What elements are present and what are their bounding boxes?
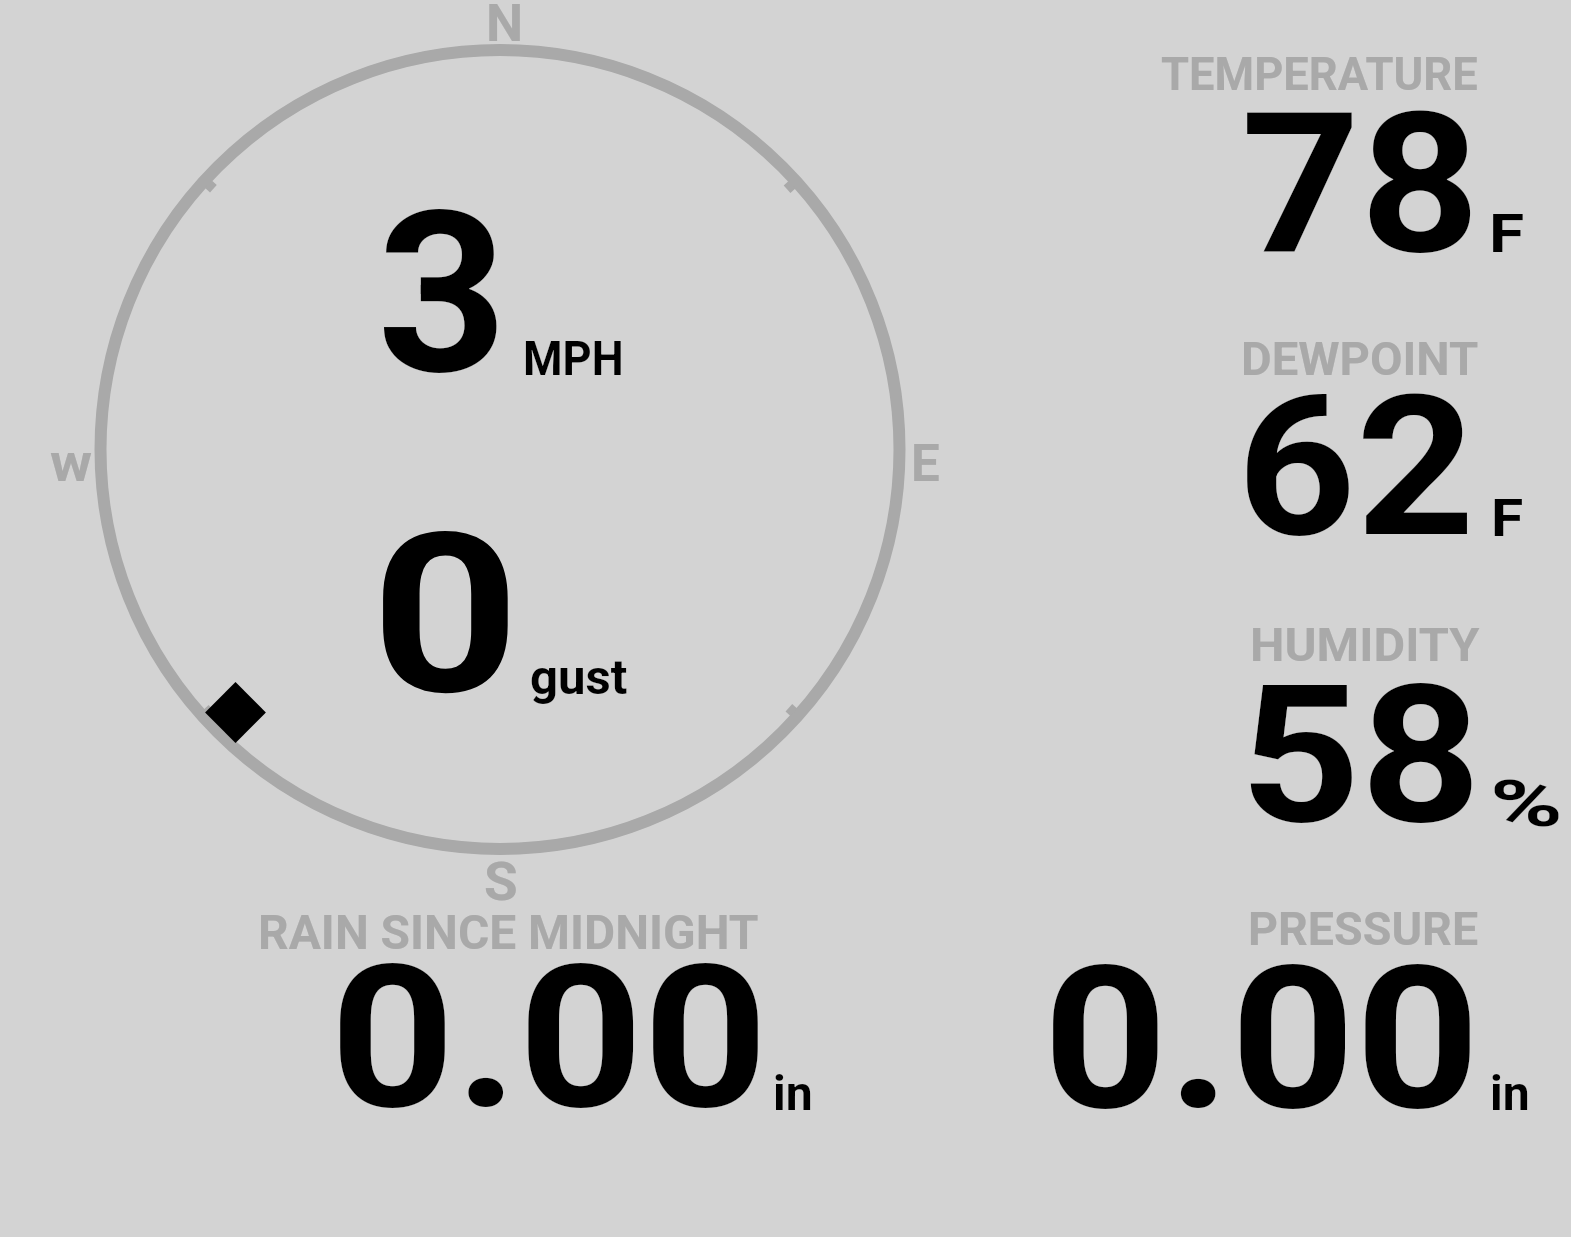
staticText: E — [911, 434, 940, 494]
button[interactable]: Humidity 58 percent — [1040, 610, 1571, 850]
staticText: HUMIDITY — [1250, 617, 1480, 672]
staticText: TEMPERATURE — [1161, 46, 1478, 101]
staticText: F — [1491, 489, 1523, 549]
staticText: PRESSURE — [1248, 901, 1479, 956]
staticText: RAIN SINCE MIDNIGHT — [258, 904, 759, 960]
staticText: w — [50, 432, 92, 494]
button[interactable]: Pressure 0.00 inches — [1000, 895, 1571, 1135]
button[interactable]: Temperature 78 degrees Fahrenheit — [1040, 40, 1571, 280]
staticText: in — [1490, 1065, 1530, 1121]
staticText: S — [484, 851, 518, 913]
staticText: gust — [530, 649, 628, 705]
staticText: DEWPOINT — [1241, 332, 1479, 386]
button[interactable]: Wind 3 miles per hour, gusting 0, from t… — [90, 0, 970, 905]
staticText: 0.00 — [330, 922, 769, 1154]
staticText: in — [773, 1065, 813, 1121]
staticText: 3 — [377, 162, 508, 426]
staticText: 58 — [1240, 644, 1482, 868]
button[interactable]: Rain since midnight 0.00 inches — [250, 895, 830, 1135]
staticText: 0 — [371, 485, 520, 745]
staticText: 78 — [1241, 70, 1480, 299]
staticText: F — [1489, 203, 1525, 265]
staticText: N — [486, 0, 523, 54]
staticText: 0.00 — [1043, 923, 1481, 1155]
staticText: MPH — [523, 330, 624, 386]
staticText: 62 — [1237, 353, 1475, 582]
staticText: % — [1490, 767, 1564, 842]
button[interactable]: Dewpoint 62 degrees Fahrenheit — [1040, 325, 1571, 565]
